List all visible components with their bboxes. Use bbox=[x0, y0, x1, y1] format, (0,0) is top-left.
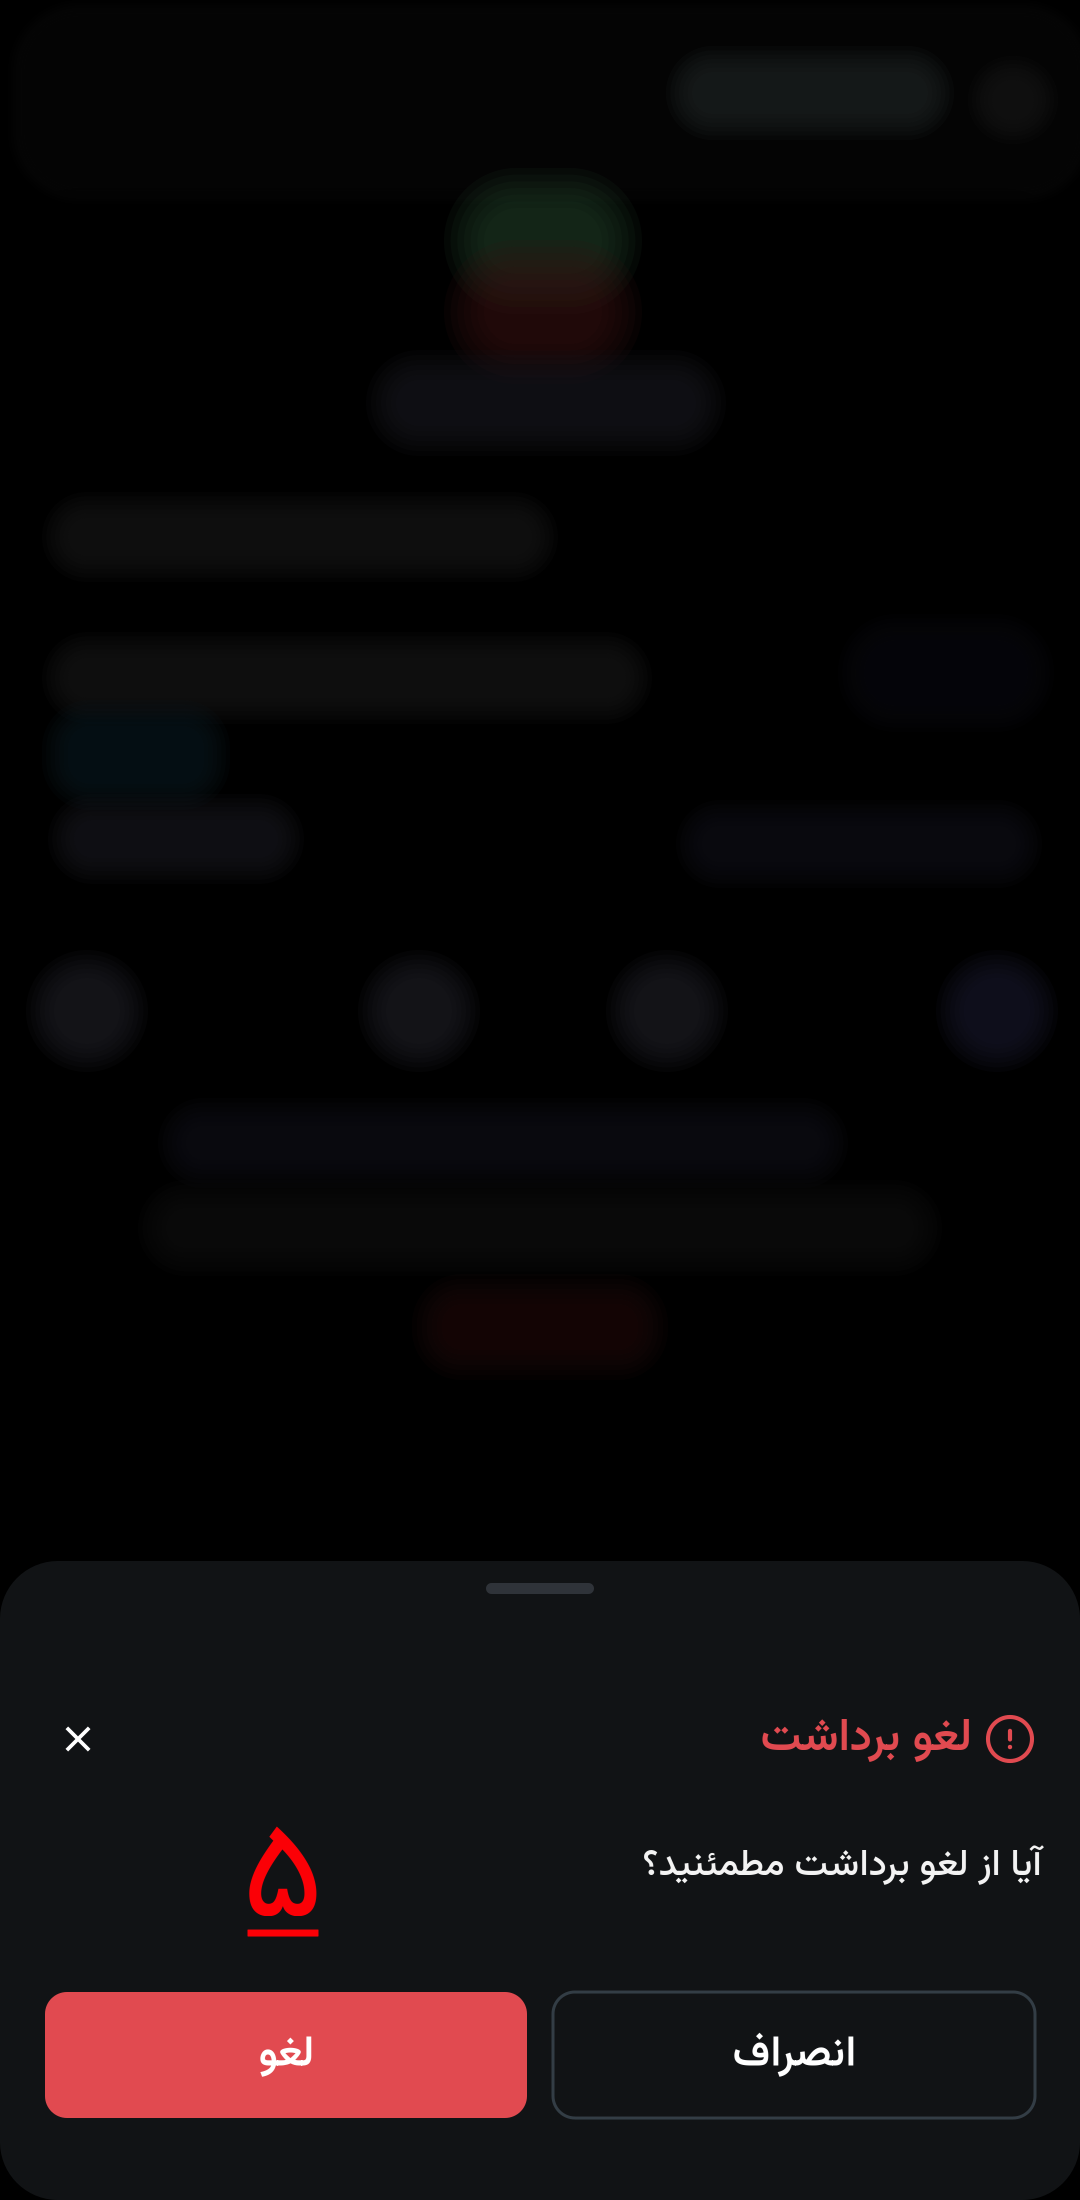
button[interactable]: لغو bbox=[45, 1992, 527, 2118]
staticText: لغو برداشت bbox=[760, 1704, 972, 1774]
button[interactable]: بستن bbox=[36, 1697, 120, 1781]
staticText: لغو bbox=[258, 2022, 314, 2088]
staticText: آیا از لغو برداشت مطمئنید؟ bbox=[642, 1837, 1041, 1895]
button[interactable]: انصراف bbox=[553, 1992, 1035, 2118]
staticText: انصراف bbox=[732, 2022, 856, 2088]
staticText: ۵ bbox=[242, 1777, 323, 1989]
